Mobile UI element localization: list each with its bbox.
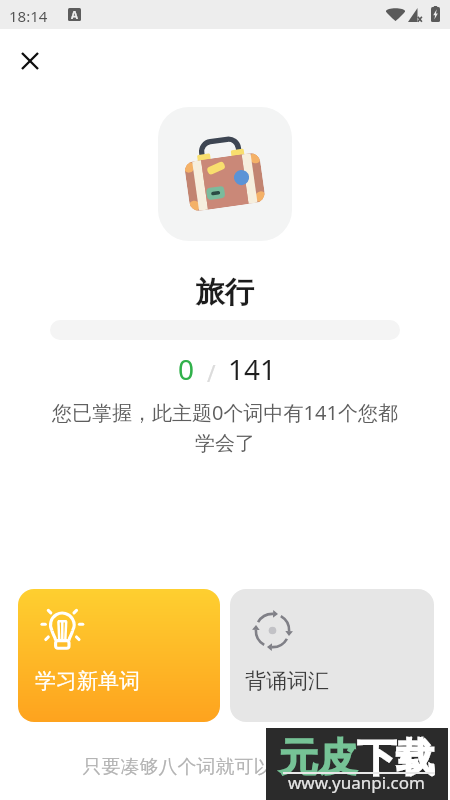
staticText: 0 (178, 350, 195, 388)
staticText: 旅行 (0, 274, 450, 311)
button[interactable]: 学习新单词 (18, 589, 220, 722)
staticText: 您已掌握，此主题0个词中有141个您都学会了 (44, 399, 406, 456)
staticText: 元皮 (279, 733, 357, 782)
button[interactable]: Close (13, 43, 47, 77)
staticText: 背诵词汇 (245, 668, 329, 694)
staticText: www.yuanpi.com (288, 771, 425, 794)
staticText: 下载 (357, 733, 435, 782)
staticText: 141 (228, 350, 277, 388)
staticText: A (71, 8, 78, 21)
staticText: 学习新单词 (35, 668, 140, 694)
button[interactable]: 背诵词汇 (230, 589, 434, 722)
staticText: 18:14 (9, 6, 48, 26)
staticText: 只要凑够八个词就可以开始学习了 (0, 755, 450, 779)
staticText: / (195, 357, 228, 388)
